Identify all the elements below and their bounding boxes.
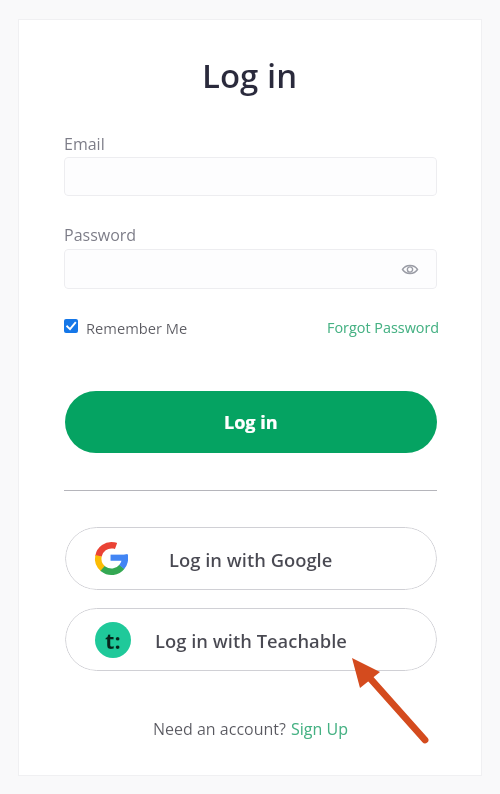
button[interactable]: Password field [64,249,437,289]
staticText: Sign Up [291,718,348,740]
button[interactable]: Log in [65,391,437,453]
button[interactable]: Forgot Password [327,318,440,338]
staticText: Log in with Teachable [155,628,347,653]
button[interactable]: Remember Me [64,318,188,334]
button[interactable]: t: [65,608,437,671]
staticText: Need an account? [153,718,291,740]
staticText: Password [64,224,137,246]
button[interactable]: Sign Up [291,718,348,740]
staticText: Log in [224,410,278,435]
staticText: Email [64,133,105,155]
button[interactable]: Log in with Google [65,527,437,590]
staticText: Log in with Google [169,547,333,572]
staticText: Forgot Password [327,318,440,338]
button[interactable]: Email field [64,157,437,196]
staticText: t: [105,625,121,655]
staticText: Remember Me [86,318,188,334]
button[interactable]: Show password [399,258,421,280]
staticText: Log in [202,53,298,98]
